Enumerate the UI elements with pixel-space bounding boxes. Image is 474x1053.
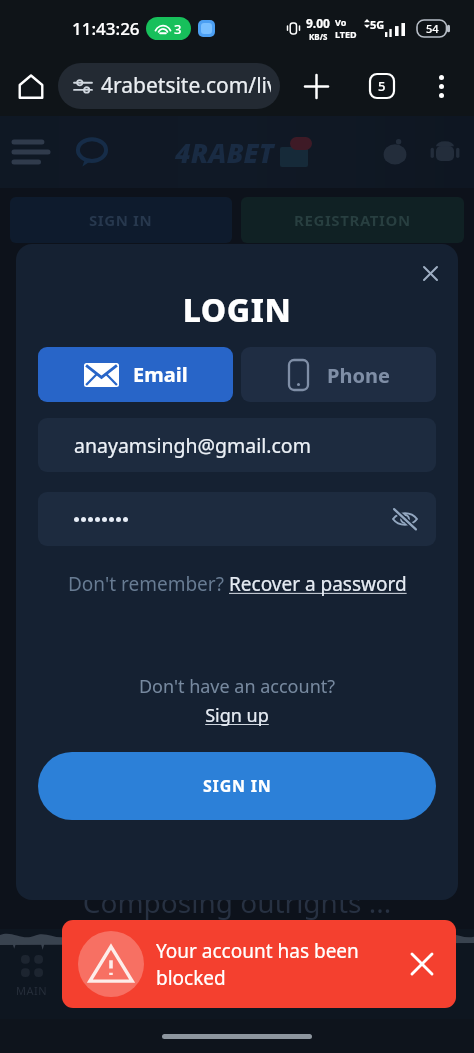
- staticText: Email: [133, 361, 188, 388]
- staticText: 11:43:26: [72, 17, 140, 40]
- staticText: Your account has been blocked: [156, 938, 396, 991]
- button[interactable]: Phone: [241, 347, 436, 402]
- button[interactable]: Tabs: [360, 64, 404, 108]
- button[interactable]: Close: [414, 257, 446, 289]
- button[interactable]: Sign up: [38, 703, 436, 728]
- staticText: 9.00: [306, 15, 330, 31]
- staticText: 3: [174, 20, 182, 38]
- staticText: 54: [426, 21, 439, 36]
- staticText: Vo: [335, 16, 347, 28]
- staticText: REGISTRATION: [294, 210, 411, 230]
- button[interactable]: Recover a password: [229, 571, 407, 597]
- staticText: anayamsingh@gmail.com: [74, 432, 311, 459]
- staticText: LTED: [335, 28, 357, 40]
- button[interactable]: More options: [421, 66, 461, 106]
- button[interactable]: New tab: [294, 64, 338, 108]
- button[interactable]: Show password: [388, 502, 422, 536]
- button[interactable]: Home: [9, 64, 53, 108]
- staticText: MAIN: [16, 983, 48, 998]
- button[interactable]: Email: [38, 347, 233, 402]
- staticText: SIGN IN: [203, 775, 272, 797]
- staticText: 4RABET: [175, 134, 274, 171]
- button[interactable]: Dismiss: [402, 944, 442, 984]
- button[interactable]: SIGN IN: [10, 197, 232, 243]
- staticText: Don't have an account?: [38, 674, 436, 699]
- staticText: LOGIN: [38, 288, 436, 332]
- staticText: Phone: [327, 362, 390, 389]
- staticText: 5G: [370, 17, 385, 32]
- button[interactable]: anayamsingh@gmail.com: [38, 418, 436, 472]
- staticText: Composing outrights ...: [0, 883, 474, 921]
- staticText: 5: [378, 77, 386, 95]
- button[interactable]: SIGN IN: [38, 752, 436, 820]
- button[interactable]: Show password: [38, 492, 436, 546]
- staticText: KB/S: [309, 31, 328, 42]
- staticText: Don't remember?: [68, 571, 229, 597]
- button[interactable]: MAIN: [16, 955, 48, 998]
- staticText: SIGN IN: [89, 210, 153, 230]
- button[interactable]: 4rabetsite.com/live: [58, 63, 280, 109]
- button[interactable]: REGISTRATION: [241, 197, 464, 243]
- staticText: 4rabetsite.com/live: [101, 71, 271, 100]
